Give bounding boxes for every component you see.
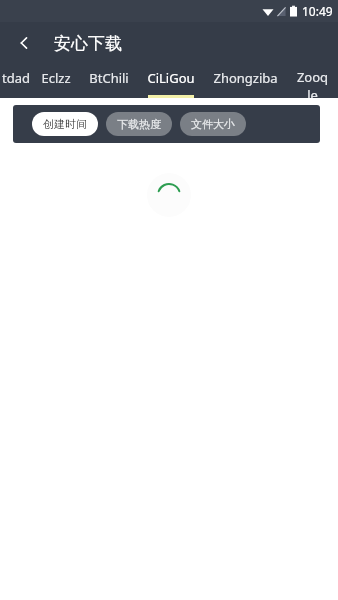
button[interactable]: BtChili: [89, 64, 129, 98]
button[interactable]: Zhongziba: [213, 64, 278, 98]
button[interactable]: 文件大小: [180, 112, 246, 136]
button[interactable]: Zooqle: [296, 64, 329, 98]
staticText: Zhongziba: [213, 69, 278, 87]
button[interactable]: 创建时间: [32, 112, 98, 136]
staticText: 下载热度: [117, 117, 161, 131]
staticText: 文件大小: [191, 117, 235, 131]
staticText: tdad: [2, 69, 30, 87]
button[interactable]: 下载热度: [106, 112, 172, 136]
button[interactable]: Eclzz: [41, 64, 71, 98]
staticText: BtChili: [89, 69, 129, 87]
button[interactable]: CiLiGou: [147, 64, 195, 98]
staticText: 10:49: [302, 3, 333, 19]
staticText: Eclzz: [41, 69, 71, 87]
button[interactable]: Back: [10, 29, 38, 57]
staticText: Zooqle: [296, 68, 329, 98]
staticText: 创建时间: [43, 117, 87, 131]
staticText: 安心下载: [54, 33, 122, 54]
button[interactable]: tdad: [2, 64, 30, 98]
staticText: CiLiGou: [147, 69, 195, 87]
